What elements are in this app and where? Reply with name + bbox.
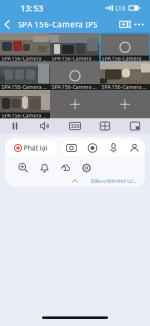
button[interactable]: Add camera (50, 90, 100, 118)
staticText: SPA 156-Camera IP4 (101, 55, 147, 62)
staticText: Điều chỉnh thứ tự... (91, 177, 136, 185)
button[interactable]: Alarm (34, 160, 55, 176)
staticText: SPA 156-Camera IP8 (1, 112, 47, 119)
button[interactable]: More options (132, 16, 146, 33)
button[interactable]: Record (82, 140, 103, 156)
button[interactable]: Cloud (55, 160, 76, 176)
staticText: Phát lại (24, 144, 48, 152)
staticText: LTE (115, 4, 126, 12)
button[interactable]: SPA 156-Camera IP1 (0, 33, 50, 61)
button[interactable]: Sound (30, 118, 60, 133)
button[interactable]: Digital zoom (13, 160, 34, 176)
button[interactable]: SPA 156-Camera IP4 (100, 33, 150, 61)
button[interactable]: Listen (124, 140, 145, 156)
button[interactable]: SPA 156-Camera IP8 (0, 90, 50, 118)
button[interactable]: Pause (0, 118, 30, 133)
button[interactable]: Settings (76, 160, 97, 176)
button[interactable]: Snapshot (61, 140, 82, 156)
button[interactable]: SPA 156-Camera IP6 (50, 61, 100, 90)
button[interactable]: Add camera (118, 16, 132, 33)
button[interactable]: Full screen (120, 118, 150, 133)
staticText: SPA 156-Camera IP2 (51, 55, 97, 62)
button[interactable]: SPA 156-Camera IP7 (100, 61, 150, 90)
button[interactable]: SPA 156-Camera IP2 (50, 33, 100, 61)
button[interactable]: SPA 156-Camera IP3 (0, 61, 50, 90)
button[interactable]: Back (0, 16, 18, 33)
staticText: 320 (70, 122, 79, 130)
staticText: SPA 156-Camera IPS (18, 19, 97, 30)
button[interactable]: Layout (90, 118, 120, 133)
button[interactable]: Phát lại (5, 140, 57, 156)
staticText: SPA 156-Camera IP1 (1, 55, 47, 62)
staticText: 13:53 (20, 2, 43, 14)
button[interactable]: Điều chỉnh thứ tự... (91, 177, 145, 185)
button[interactable]: Add camera (100, 90, 150, 118)
staticText: SPA 156-Camera IP6 (51, 83, 97, 91)
staticText: SPA 156-Camera IP7 (101, 83, 147, 91)
staticText: SPA 156-Camera IP3 (1, 83, 47, 91)
button[interactable]: Stream quality (60, 118, 90, 133)
button[interactable]: Talk (103, 140, 124, 156)
